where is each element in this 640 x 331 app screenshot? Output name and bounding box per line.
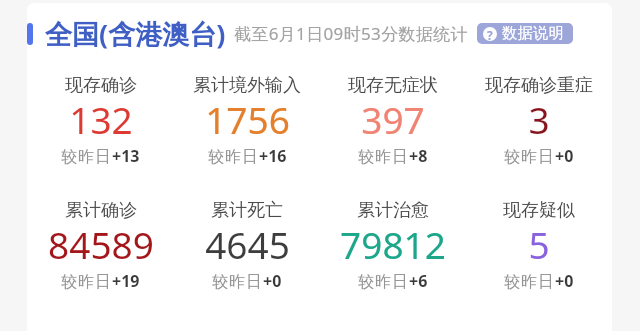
- staticText: 397: [361, 94, 425, 144]
- staticText: 现存疑似: [503, 199, 575, 222]
- staticText: 全国(含港澳台): [45, 15, 226, 52]
- staticText: ?: [487, 27, 493, 41]
- staticText: 累计治愈: [357, 199, 429, 222]
- staticText: 5: [528, 219, 550, 269]
- staticText: 较昨日: [358, 272, 409, 292]
- staticText: +0: [555, 270, 574, 292]
- button[interactable]: 现存确诊重症: [466, 74, 612, 169]
- staticText: 较昨日: [208, 147, 259, 167]
- staticText: 较昨日: [504, 272, 555, 292]
- button[interactable]: 累计确诊: [27, 199, 174, 294]
- button[interactable]: 全国(含港澳台): [45, 15, 226, 52]
- staticText: 4645: [205, 219, 290, 269]
- staticText: 132: [69, 94, 133, 144]
- button[interactable]: 累计境外输入: [174, 74, 320, 169]
- staticText: 累计境外输入: [193, 74, 301, 97]
- button[interactable]: 数据说明帮助: [477, 23, 573, 44]
- staticText: +16: [259, 145, 287, 167]
- staticText: +8: [409, 145, 428, 167]
- staticText: 1756: [205, 94, 290, 144]
- staticText: 现存无症状: [348, 74, 438, 97]
- staticText: 3: [528, 94, 550, 144]
- staticText: +0: [263, 270, 282, 292]
- staticText: 较昨日: [212, 272, 263, 292]
- button[interactable]: 累计治愈: [320, 199, 466, 294]
- staticText: 较昨日: [504, 147, 555, 167]
- staticText: +13: [112, 145, 140, 167]
- staticText: 较昨日: [61, 147, 112, 167]
- staticText: 截至6月1日09时53分数据统计: [234, 22, 468, 45]
- staticText: 累计死亡: [211, 199, 283, 222]
- staticText: 现存确诊重症: [485, 74, 593, 97]
- staticText: 较昨日: [358, 147, 409, 167]
- staticText: 累计确诊: [65, 199, 137, 222]
- button[interactable]: 现存疑似: [466, 199, 612, 294]
- staticText: 较昨日: [61, 272, 112, 292]
- staticText: 数据说明: [502, 24, 565, 43]
- staticText: +19: [112, 270, 140, 292]
- button[interactable]: 累计死亡: [174, 199, 320, 294]
- staticText: 84589: [48, 219, 154, 269]
- staticText: +6: [409, 270, 428, 292]
- staticText: 现存确诊: [65, 74, 137, 97]
- button[interactable]: 现存无症状: [320, 74, 466, 169]
- staticText: 79812: [340, 219, 446, 269]
- other: 数据说明帮助: [483, 27, 497, 41]
- button[interactable]: 现存确诊: [27, 74, 174, 169]
- staticText: +0: [555, 145, 574, 167]
